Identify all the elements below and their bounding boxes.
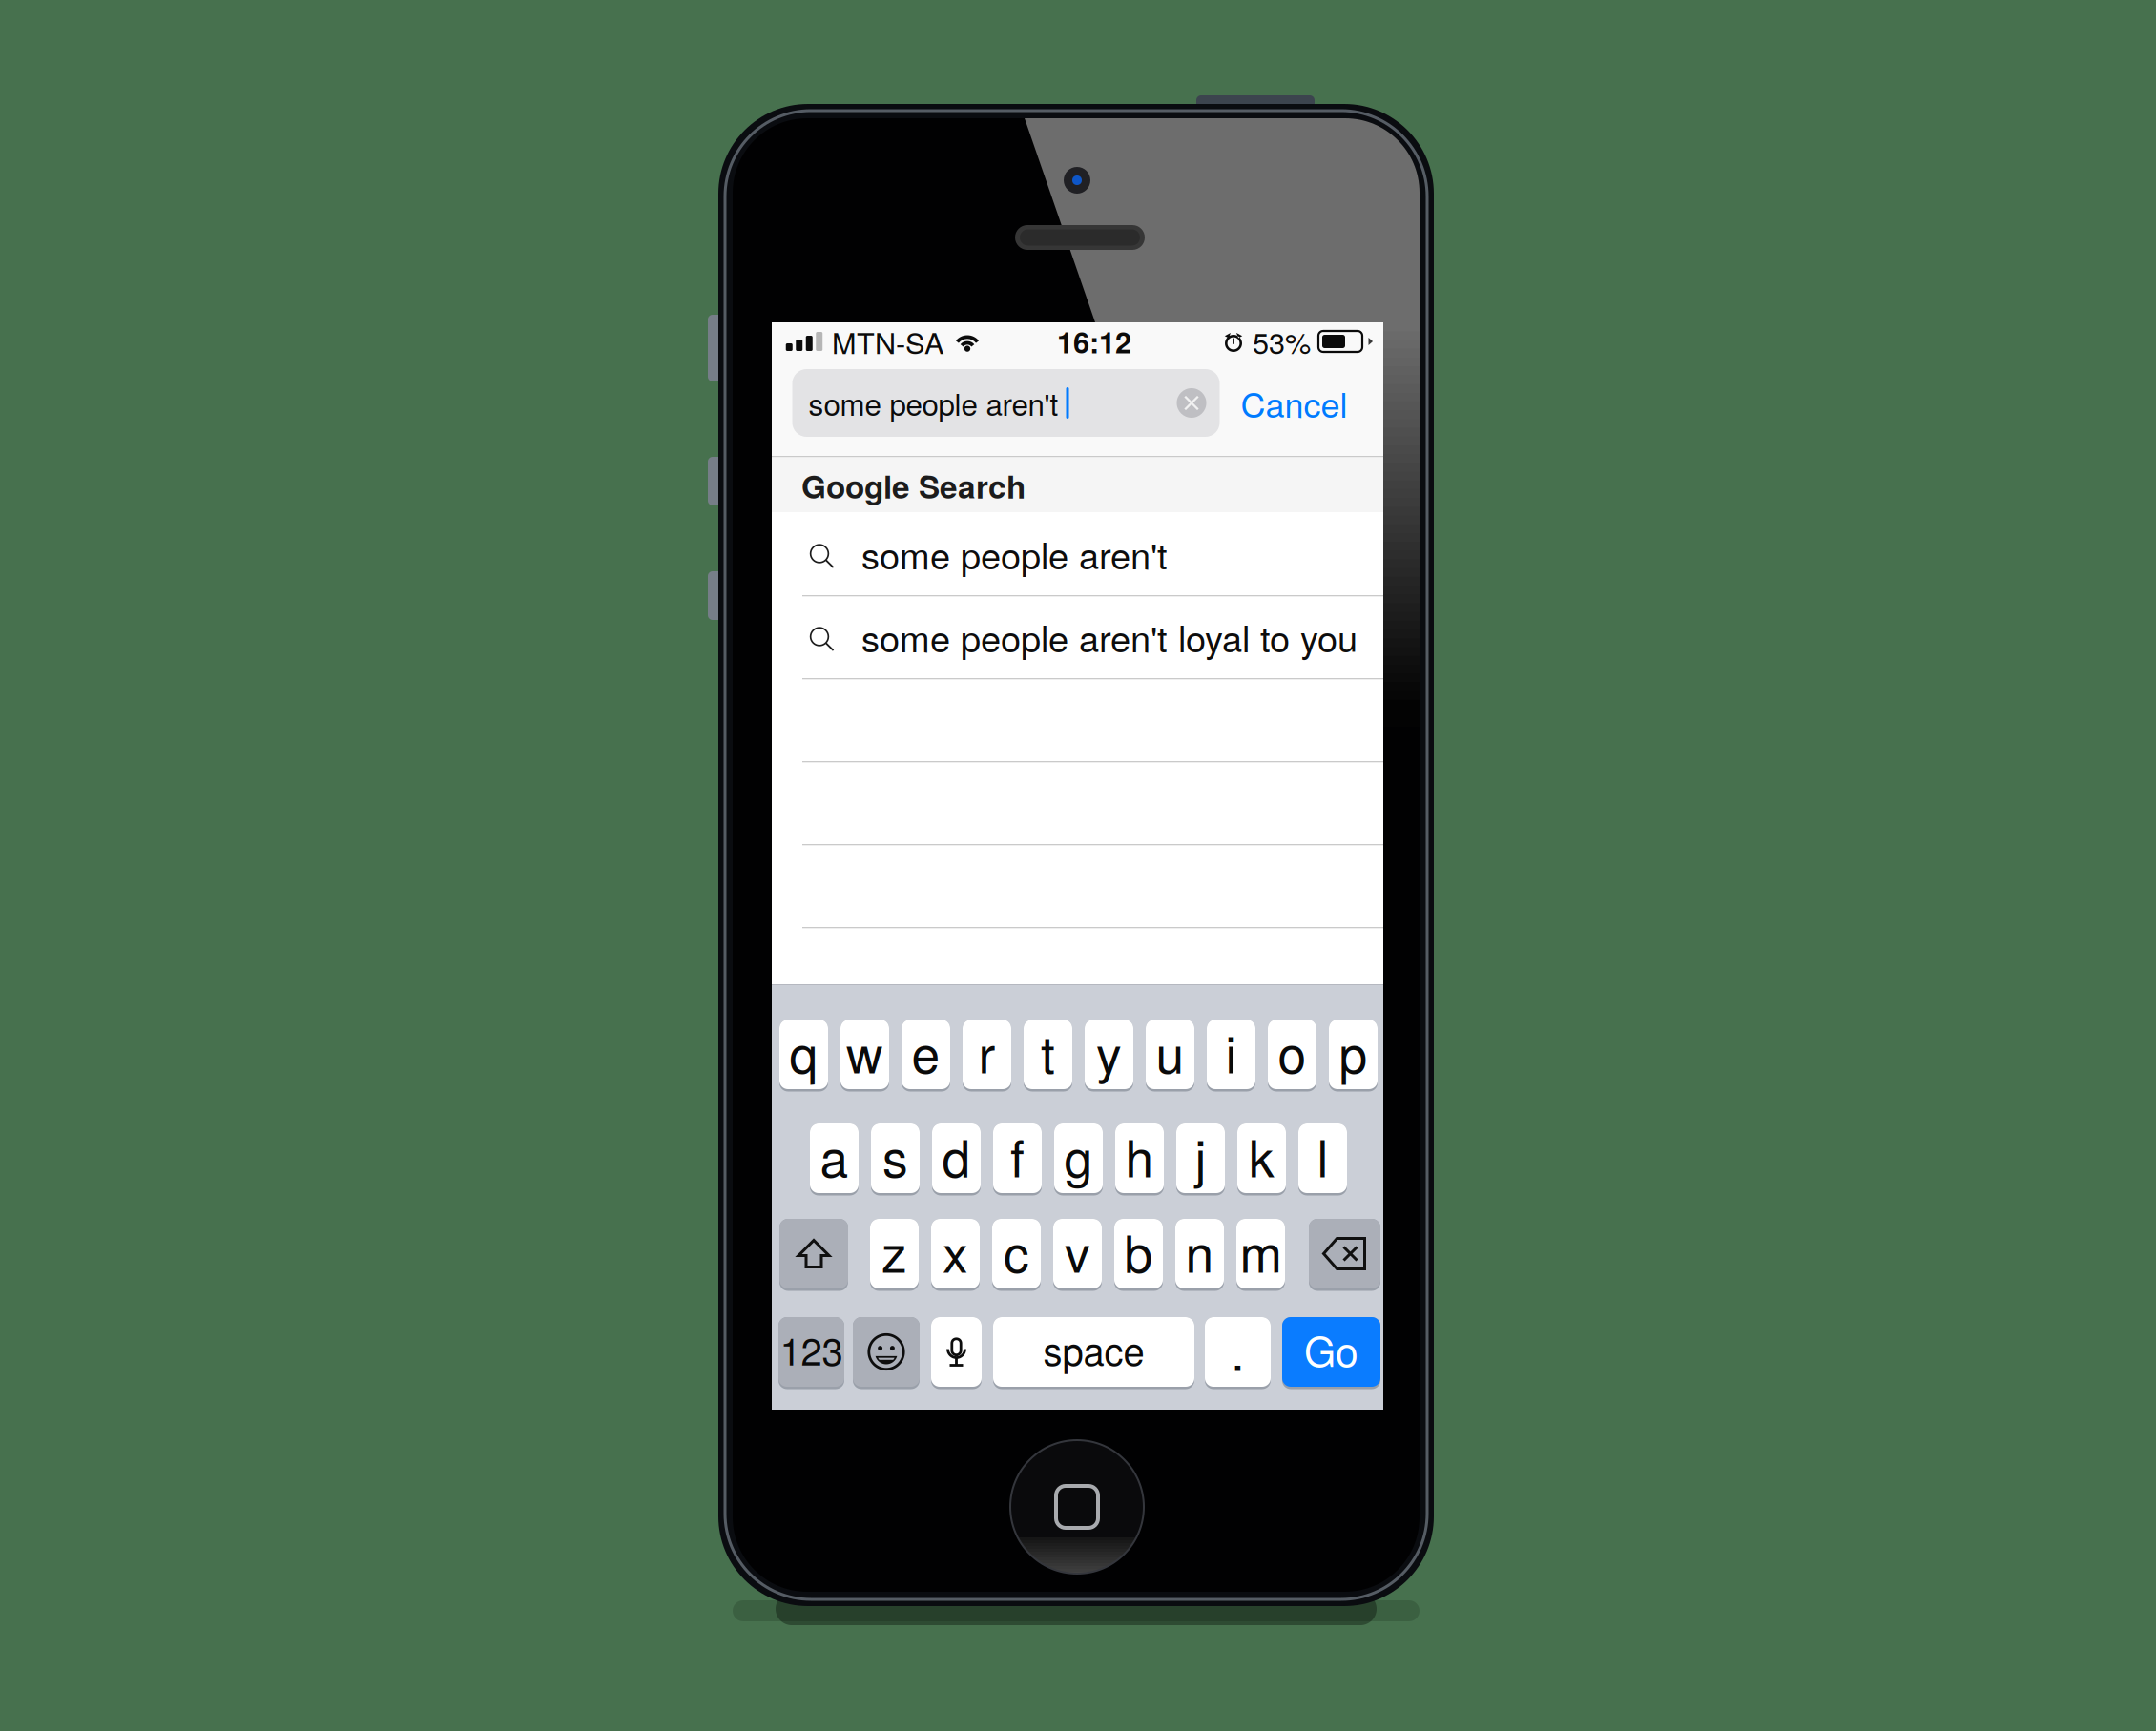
button[interactable]: 123 — [778, 1317, 844, 1389]
staticText: u — [1156, 1015, 1184, 1088]
staticText: MTN-SA — [832, 320, 943, 362]
staticText: b — [1124, 1214, 1153, 1287]
button[interactable]: k — [1237, 1123, 1286, 1195]
button[interactable]: e — [902, 1020, 950, 1092]
staticText: e — [912, 1015, 940, 1088]
button[interactable]: q — [779, 1020, 828, 1092]
staticText: x — [943, 1214, 968, 1287]
staticText: v — [1065, 1214, 1090, 1287]
button[interactable]: f — [993, 1123, 1042, 1195]
staticText: d — [942, 1119, 971, 1192]
button[interactable]: r — [963, 1020, 1011, 1092]
staticText: Cancel — [1241, 378, 1347, 428]
staticText: 53% — [1253, 320, 1311, 362]
staticText: w — [846, 1015, 883, 1088]
staticText: p — [1339, 1015, 1368, 1088]
staticText: c — [1004, 1214, 1029, 1287]
staticText: . — [1231, 1313, 1245, 1385]
staticText: y — [1096, 1015, 1122, 1088]
button[interactable]: v — [1053, 1219, 1102, 1291]
button[interactable]: Go — [1282, 1317, 1380, 1389]
button[interactable]: l — [1298, 1123, 1347, 1195]
staticText: s — [882, 1119, 908, 1192]
button[interactable]: Shift — [779, 1219, 848, 1291]
staticText: g — [1064, 1119, 1093, 1192]
button[interactable]: Delete — [1309, 1219, 1380, 1291]
button[interactable]: h — [1115, 1123, 1164, 1195]
staticText: r — [978, 1015, 995, 1088]
button[interactable]: i — [1207, 1020, 1255, 1092]
button[interactable]: x — [931, 1219, 980, 1291]
button[interactable]: a — [810, 1123, 859, 1195]
button[interactable]: n — [1175, 1219, 1224, 1291]
button[interactable]: b — [1114, 1219, 1163, 1291]
button[interactable]: y — [1085, 1020, 1133, 1092]
staticText: some people aren't loyal to you — [861, 611, 1358, 663]
staticText: Go — [1304, 1320, 1358, 1378]
button[interactable]: Dictation — [931, 1317, 982, 1389]
staticText: j — [1195, 1119, 1206, 1192]
button[interactable]: t — [1024, 1020, 1072, 1092]
staticText: t — [1041, 1015, 1055, 1088]
button[interactable]: p — [1329, 1020, 1378, 1092]
staticText: Google Search — [801, 463, 1026, 508]
button[interactable]: Emoji — [853, 1317, 920, 1389]
staticText: some people aren't — [861, 528, 1168, 580]
button[interactable]: space — [993, 1317, 1194, 1389]
staticText: o — [1278, 1015, 1306, 1088]
button[interactable]: Clear text — [1177, 388, 1206, 418]
button[interactable]: d — [932, 1123, 981, 1195]
button[interactable]: some people aren't loyal to you — [772, 595, 1383, 678]
button[interactable]: w — [840, 1020, 889, 1092]
staticText: z — [881, 1214, 907, 1287]
staticText: q — [789, 1015, 818, 1088]
staticText: space — [1043, 1322, 1144, 1376]
staticText: h — [1125, 1119, 1154, 1192]
staticText: a — [820, 1119, 849, 1192]
button[interactable]: g — [1054, 1123, 1103, 1195]
staticText: f — [1010, 1119, 1025, 1192]
button[interactable]: o — [1268, 1020, 1316, 1092]
button[interactable]: m — [1236, 1219, 1285, 1291]
button[interactable]: some people aren't — [772, 512, 1383, 595]
button[interactable]: c — [992, 1219, 1041, 1291]
button[interactable]: z — [870, 1219, 919, 1291]
button[interactable]: Cancel — [1220, 369, 1368, 437]
staticText: i — [1225, 1015, 1237, 1088]
button[interactable]: . — [1205, 1317, 1271, 1389]
staticText: m — [1240, 1214, 1282, 1287]
staticText: some people aren't — [808, 382, 1058, 424]
staticText: l — [1317, 1119, 1328, 1192]
staticText: k — [1249, 1119, 1275, 1192]
staticText: 123 — [780, 1322, 843, 1376]
staticText: 16:12 — [1057, 320, 1131, 362]
button[interactable]: u — [1146, 1020, 1194, 1092]
button[interactable]: j — [1176, 1123, 1225, 1195]
button[interactable]: s — [871, 1123, 920, 1195]
staticText: n — [1185, 1214, 1214, 1287]
